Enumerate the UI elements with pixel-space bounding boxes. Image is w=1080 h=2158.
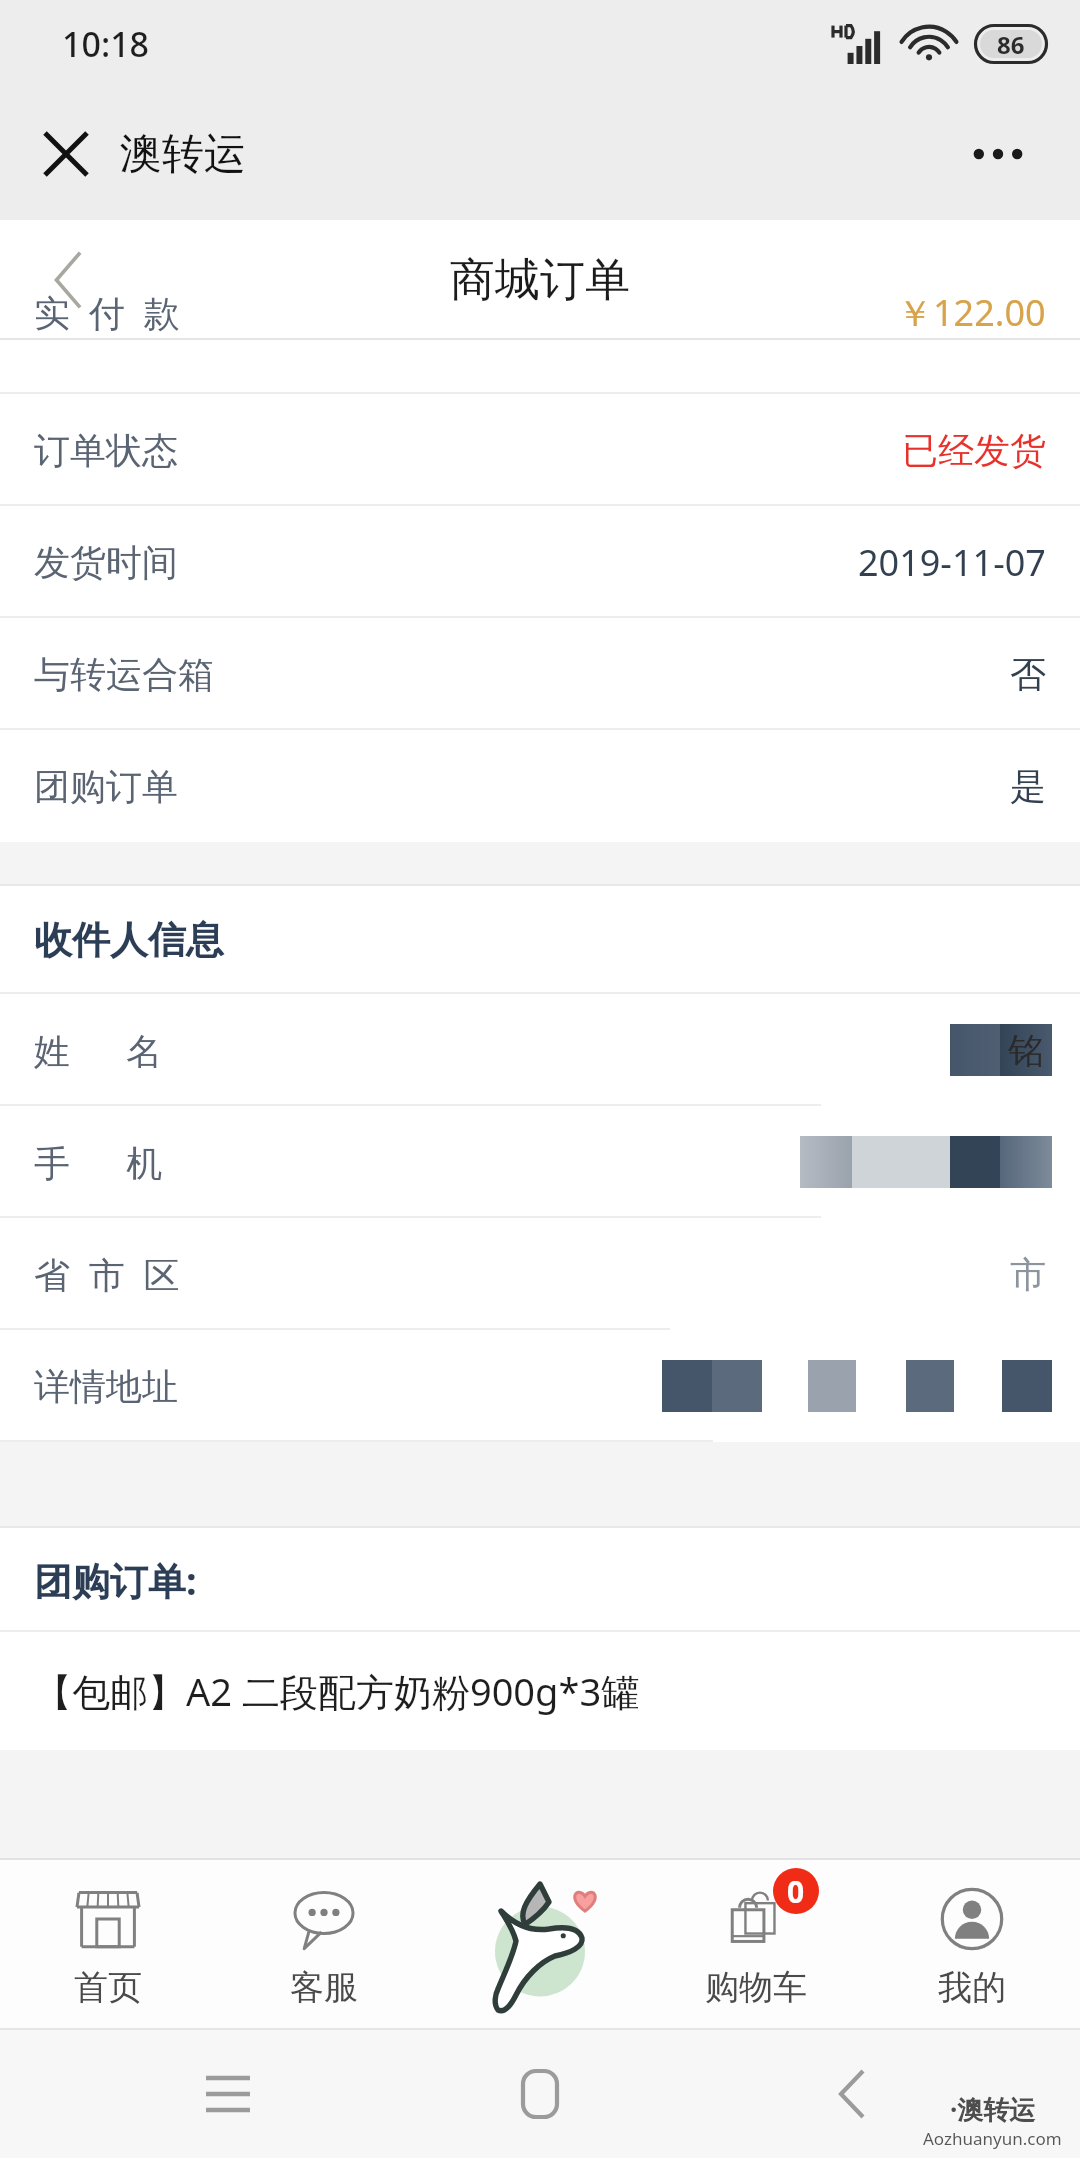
button[interactable]: 澳转运 Home [432, 1860, 648, 2028]
button[interactable]: 实 付 款 [0, 340, 1080, 394]
staticText: 详情地址 [34, 1364, 178, 1409]
staticText: 实 付 款 [34, 288, 180, 337]
button[interactable]: 姓 名 [0, 994, 1080, 1106]
other: Close [30, 118, 102, 190]
staticText: 澳转运 [120, 128, 246, 181]
staticText: 市 [1010, 1252, 1046, 1297]
button[interactable]: 【包邮】A2 二段配方奶粉900g*3罐 [0, 1632, 1080, 1750]
staticText: 团购订单: [34, 1554, 197, 1606]
staticText: 手 机 [34, 1138, 163, 1187]
staticText: 86 [997, 28, 1025, 61]
button[interactable]: 团购订单 [0, 730, 1080, 842]
button[interactable]: 订单状态 [0, 394, 1080, 506]
staticText: 收件人信息 [34, 916, 224, 964]
staticText: 我的 [938, 1966, 1006, 2009]
button[interactable]: Back [22, 234, 114, 326]
button[interactable]: Back [804, 2046, 900, 2142]
button[interactable]: 手 机 [0, 1106, 1080, 1218]
button[interactable]: 发货时间 [0, 506, 1080, 618]
staticText: 与转运合箱 [34, 652, 214, 697]
staticText: 是 [1010, 764, 1046, 809]
staticText: 已经发货 [902, 428, 1046, 473]
staticText: 2019-11-07 [858, 538, 1046, 587]
button[interactable]: 客服 [216, 1860, 432, 2028]
button[interactable]: 省 市 区 [0, 1218, 1080, 1330]
staticText: 客服 [290, 1966, 358, 2009]
staticText: 0 [787, 1871, 805, 1912]
staticText: 发货时间 [34, 540, 178, 585]
staticText: 订单状态 [34, 428, 178, 473]
button[interactable]: Close [30, 118, 246, 190]
staticText: 团购订单 [34, 764, 178, 809]
button[interactable]: Recents [180, 2046, 276, 2142]
button[interactable]: 我的 [864, 1860, 1080, 2028]
staticText: ·澳转运 [950, 2091, 1036, 2127]
staticText: 商城订单 [450, 252, 630, 309]
button[interactable]: 与转运合箱 [0, 618, 1080, 730]
staticText: Aozhuanyun.com [923, 2127, 1062, 2150]
staticText: 10:18 [62, 21, 150, 67]
button[interactable]: 首页 [0, 1860, 216, 2028]
staticText: 【包邮】A2 二段配方奶粉900g*3罐 [34, 1665, 640, 1717]
button[interactable]: 详情地址 [0, 1330, 1080, 1442]
button[interactable]: Home [492, 2046, 588, 2142]
button[interactable]: 0 [648, 1860, 864, 2028]
staticText: ￥122.00 [897, 288, 1046, 337]
staticText: 姓 名 [34, 1026, 163, 1075]
staticText: 首页 [74, 1966, 142, 2009]
staticText: 铭 [1008, 1028, 1044, 1073]
button[interactable]: More options [958, 114, 1038, 194]
staticText: 购物车 [705, 1966, 807, 2009]
staticText: 否 [1010, 652, 1046, 697]
staticText: 省 市 区 [34, 1250, 180, 1299]
